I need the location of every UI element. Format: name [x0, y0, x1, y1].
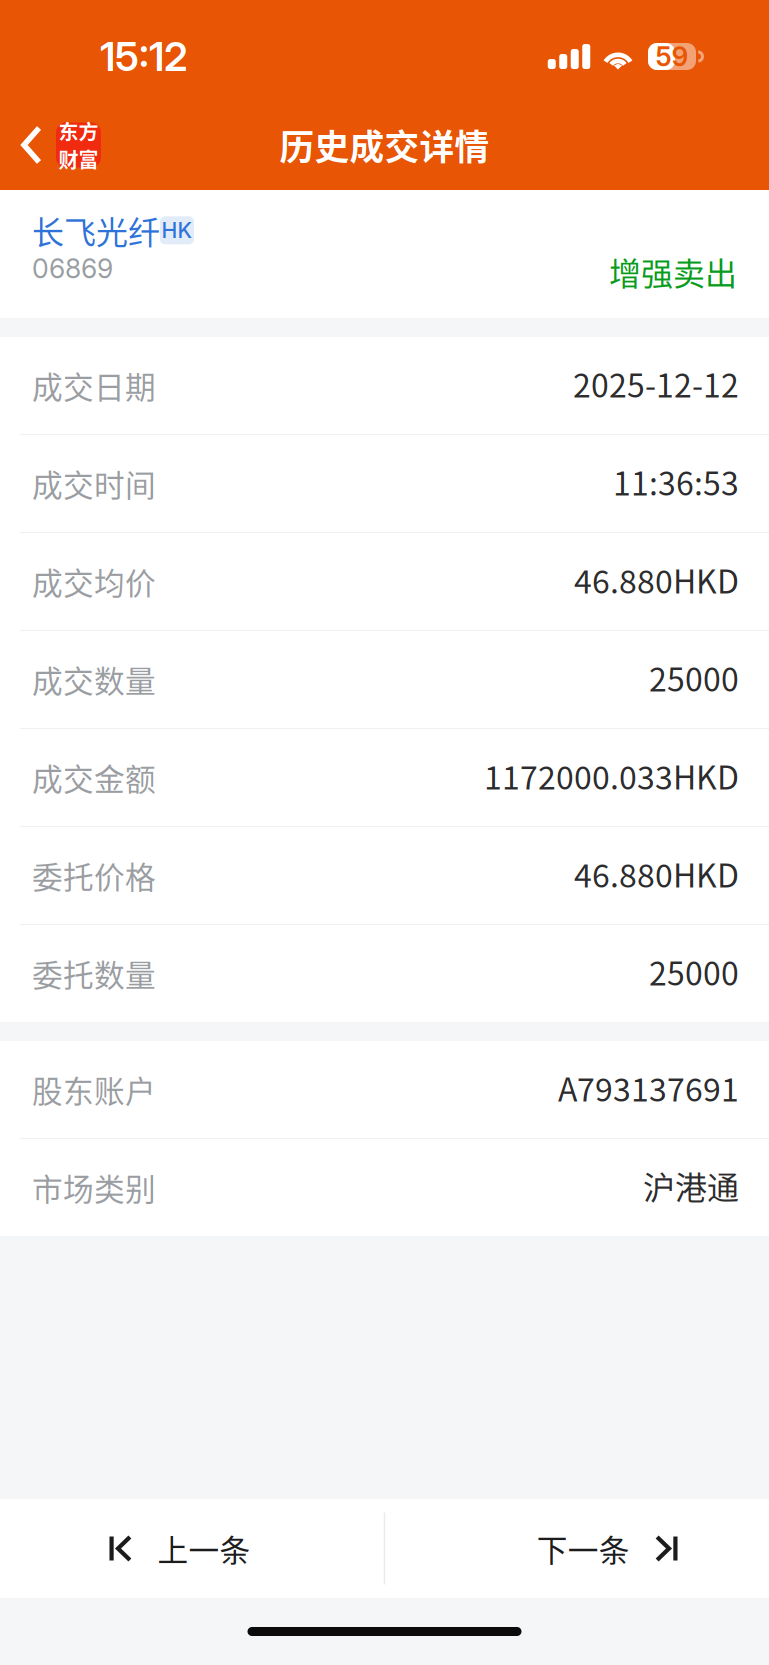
staticText: 25000 [649, 654, 739, 701]
staticText: 委托价格 [32, 853, 156, 898]
staticText: 46.880HKD [574, 556, 739, 603]
staticText: 历史成交详情 [279, 120, 489, 170]
staticText: 1172000.033HKD [484, 752, 739, 799]
button[interactable]: 上一条 [0, 1499, 384, 1598]
staticText: 2025-12-12 [573, 360, 739, 407]
staticText: 成交金额 [32, 755, 156, 800]
staticText: A793137691 [558, 1064, 739, 1111]
staticText: 成交日期 [32, 363, 156, 408]
staticText: 59 [655, 40, 688, 73]
staticText: HK [161, 217, 192, 243]
staticText: 15:12 [100, 32, 188, 81]
staticText: 东方 [58, 116, 98, 145]
staticText: 下一条 [537, 1526, 630, 1571]
button[interactable]: 下一条 [385, 1499, 769, 1598]
staticText: 长飞光纤 [32, 207, 160, 253]
staticText: 上一条 [157, 1526, 250, 1571]
staticText: 06869 [32, 252, 113, 285]
staticText: 沪港通 [643, 1162, 739, 1209]
staticText: 成交均价 [32, 559, 156, 604]
staticText: 11:36:53 [613, 458, 739, 505]
staticText: 46.880HKD [574, 850, 739, 897]
staticText: 财富 [58, 144, 98, 173]
staticText: 成交数量 [32, 657, 156, 702]
staticText: 委托数量 [32, 951, 156, 996]
staticText: 市场类别 [32, 1165, 156, 1210]
staticText: 股东账户 [32, 1067, 156, 1112]
staticText: 25000 [649, 948, 739, 995]
staticText: 增强卖出 [609, 248, 737, 295]
staticText: 成交时间 [32, 461, 156, 506]
button[interactable]: Back [0, 100, 115, 190]
